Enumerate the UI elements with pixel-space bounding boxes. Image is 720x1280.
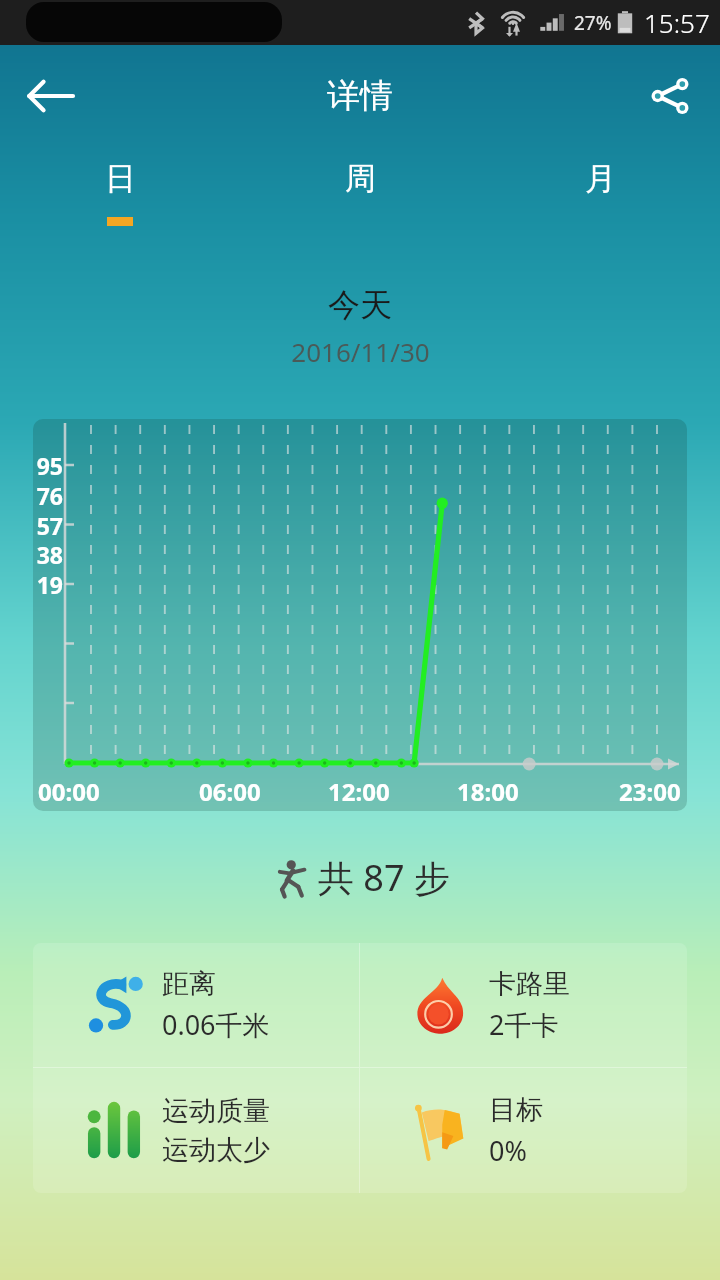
staticText: 12:00 xyxy=(328,775,390,808)
staticText: 27% xyxy=(574,10,612,36)
button[interactable]: Back xyxy=(16,62,84,130)
staticText: 23:00 xyxy=(619,775,681,808)
staticText: 运动质量 xyxy=(162,1094,270,1128)
staticText: 月 xyxy=(585,159,616,198)
staticText: 00:00 xyxy=(38,775,100,808)
staticText: 2016/11/30 xyxy=(291,334,430,369)
staticText: 15:57 xyxy=(644,5,710,40)
button[interactable]: 周 xyxy=(240,147,480,239)
staticText: 76 xyxy=(33,480,63,511)
staticText: 运动太少 xyxy=(162,1133,270,1167)
staticText: 距离 xyxy=(162,967,216,1001)
button[interactable]: 日 xyxy=(0,147,240,239)
button[interactable]: 月 xyxy=(480,147,720,239)
button[interactable]: 卡路里 xyxy=(360,943,687,1067)
staticText: 共 87 步 xyxy=(318,853,450,902)
staticText: 0.06千米 xyxy=(162,1006,270,1043)
staticText: 目标 xyxy=(489,1093,543,1127)
button[interactable]: Share xyxy=(638,64,702,128)
staticText: 18:00 xyxy=(457,775,519,808)
staticText: 06:00 xyxy=(199,775,261,808)
staticText: 今天 xyxy=(328,285,392,325)
staticText: 日 xyxy=(105,159,136,198)
button[interactable]: 距离 xyxy=(33,943,359,1067)
button[interactable]: 目标 xyxy=(360,1068,687,1193)
staticText: 95 xyxy=(33,450,63,481)
staticText: 详情 xyxy=(327,75,393,117)
staticText: 19 xyxy=(33,569,63,600)
staticText: 周 xyxy=(345,159,376,198)
button[interactable]: 运动质量 xyxy=(33,1068,359,1193)
staticText: 0% xyxy=(489,1132,527,1169)
staticText: 57 xyxy=(33,510,63,541)
staticText: 2千卡 xyxy=(489,1006,559,1043)
staticText: 卡路里 xyxy=(489,967,570,1001)
staticText: 38 xyxy=(33,539,63,570)
